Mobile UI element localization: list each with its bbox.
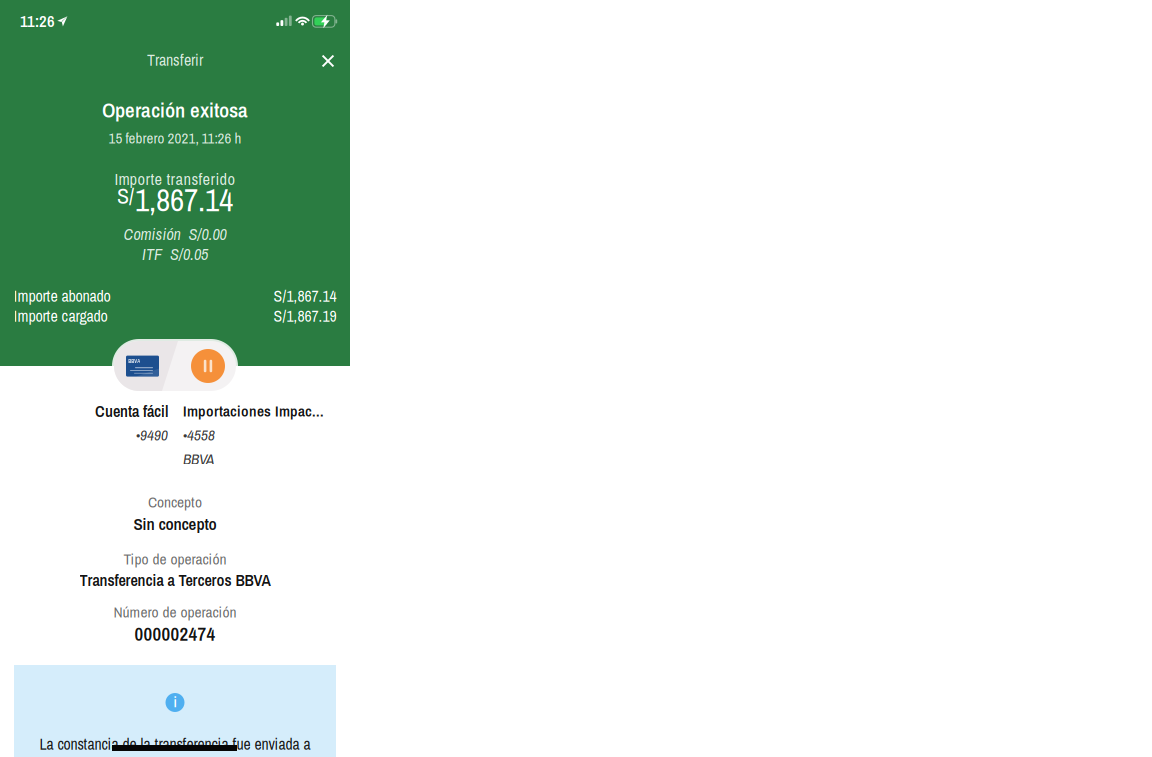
- staticText: BBVA: [183, 449, 214, 469]
- button[interactable]: Cerrar: [310, 43, 346, 79]
- staticText: Operación exitosa: [102, 96, 248, 124]
- staticText: i: [173, 692, 176, 712]
- staticText: BBVA: [128, 358, 140, 365]
- staticText: S/1,867.19: [273, 305, 336, 327]
- staticText: Transferencia a Terceros BBVA: [79, 569, 270, 591]
- staticText: 1,867.14: [135, 179, 233, 221]
- staticText: Comisión S/0.00: [123, 223, 226, 245]
- staticText: ITF S/0.05: [142, 243, 208, 265]
- staticText: 000002474: [134, 621, 215, 647]
- staticText: S/1,867.14: [273, 285, 336, 307]
- staticText: Número de operación: [113, 602, 236, 622]
- staticText: Importaciones Impac...: [183, 401, 324, 421]
- staticText: •4558: [183, 425, 215, 445]
- staticText: •9490: [136, 425, 168, 445]
- staticText: Transferir: [147, 49, 203, 71]
- staticText: Cuenta fácil: [95, 400, 168, 422]
- staticText: Tipo de operación: [123, 549, 226, 569]
- staticText: Importe cargado: [13, 305, 107, 327]
- staticText: Sin concepto: [133, 513, 216, 535]
- staticText: Concepto: [148, 492, 202, 512]
- staticText: 15 febrero 2021, 11:26 h: [108, 128, 241, 148]
- staticText: Importe transferido: [114, 168, 235, 190]
- staticText: S/: [117, 181, 134, 210]
- staticText: 11:26: [20, 10, 55, 32]
- staticText: Importe abonado: [13, 285, 110, 307]
- staticText: La constancia de la transferencia fue en…: [39, 733, 310, 755]
